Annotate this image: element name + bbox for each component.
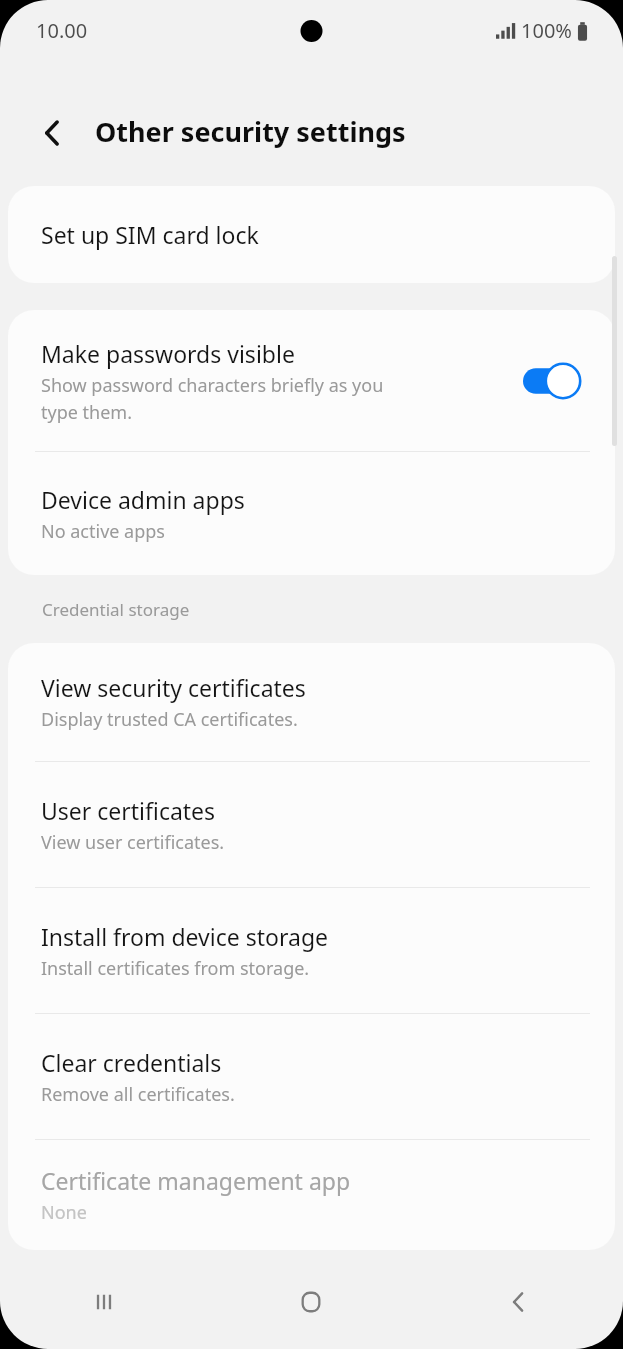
staticText: Display trusted CA certificates. bbox=[41, 707, 298, 732]
staticText: Set up SIM card lock bbox=[41, 219, 259, 250]
staticText: Install certificates from storage. bbox=[41, 956, 310, 981]
staticText: Clear credentials bbox=[41, 1047, 222, 1078]
button[interactable]: Back bbox=[24, 104, 82, 162]
button[interactable]: Clear credentials bbox=[8, 1014, 615, 1139]
button[interactable]: View security certificates bbox=[8, 643, 615, 761]
staticText: View security certificates bbox=[41, 672, 306, 703]
staticText: Credential storage bbox=[42, 598, 190, 621]
button[interactable]: Recent apps bbox=[0, 1255, 207, 1349]
staticText: Other security settings bbox=[95, 113, 406, 150]
button[interactable]: Back bbox=[415, 1255, 623, 1349]
button[interactable]: Make passwords visible bbox=[523, 361, 587, 401]
staticText: Certificate management app bbox=[41, 1165, 351, 1196]
button[interactable]: Install from device storage bbox=[8, 888, 615, 1013]
staticText: User certificates bbox=[41, 795, 216, 826]
staticText: View user certificates. bbox=[41, 830, 225, 855]
staticText: Remove all certificates. bbox=[41, 1082, 235, 1107]
staticText: 10.00 bbox=[36, 17, 88, 44]
button[interactable]: Home bbox=[207, 1255, 415, 1349]
staticText: Show password characters briefly as you … bbox=[41, 373, 384, 424]
button[interactable]: Device admin apps bbox=[8, 452, 615, 575]
staticText: Make passwords visible bbox=[41, 338, 295, 369]
staticText: None bbox=[41, 1200, 87, 1225]
button[interactable]: Set up SIM card lock bbox=[8, 186, 615, 283]
button[interactable]: Make passwords visible bbox=[8, 310, 615, 451]
button[interactable]: User certificates bbox=[8, 762, 615, 887]
staticText: No active apps bbox=[41, 519, 165, 544]
staticText: Install from device storage bbox=[41, 921, 328, 952]
button[interactable]: Certificate management app bbox=[8, 1140, 615, 1250]
staticText: 100% bbox=[521, 17, 572, 44]
staticText: Device admin apps bbox=[41, 484, 245, 515]
